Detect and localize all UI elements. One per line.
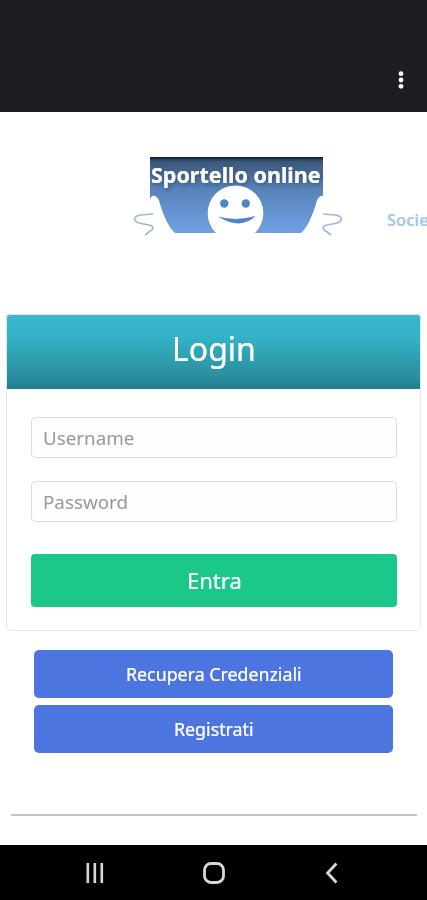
button[interactable]: Username (31, 417, 397, 458)
staticText: Recupera Credenziali (126, 662, 302, 686)
staticText: Societ (387, 208, 427, 230)
button[interactable]: Recupera Credenziali (34, 650, 393, 698)
staticText: Username (43, 425, 135, 451)
button[interactable]: Recents (71, 849, 119, 897)
staticText: Password (43, 489, 129, 515)
button[interactable]: Registrati (34, 705, 393, 753)
button[interactable]: Home (190, 849, 238, 897)
button[interactable]: Entra (31, 554, 397, 607)
staticText: Sportello online (151, 160, 321, 189)
button[interactable]: More options (379, 58, 423, 102)
staticText: Login (172, 327, 256, 371)
button[interactable]: Password (31, 481, 397, 522)
staticText: Entra (187, 565, 242, 595)
button[interactable]: Back (308, 849, 356, 897)
staticText: Registrati (174, 717, 254, 741)
